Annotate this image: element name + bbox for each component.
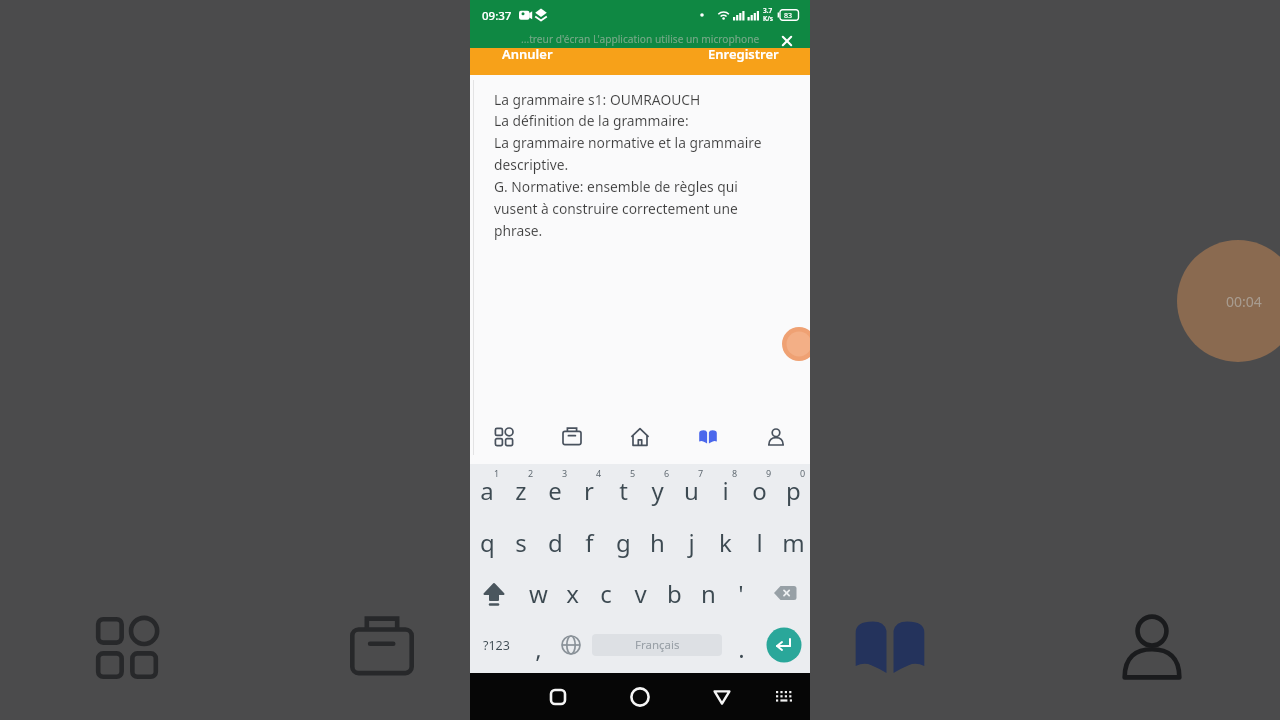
button[interactable]: n	[691, 567, 725, 619]
button[interactable]: '	[724, 567, 758, 619]
staticText: '	[738, 577, 744, 610]
staticText: La grammaire s1: OUMRAOUCH La définition…	[494, 90, 762, 240]
button[interactable]: e	[538, 464, 572, 516]
staticText: 2	[528, 467, 534, 479]
staticText: l	[756, 526, 763, 559]
staticText: a	[480, 474, 494, 507]
staticText: q	[480, 526, 495, 559]
staticText: 1	[494, 467, 500, 479]
button[interactable]	[622, 679, 658, 715]
button[interactable]	[754, 415, 798, 459]
button[interactable]: Français	[592, 634, 722, 656]
button[interactable]: j	[674, 516, 708, 568]
staticText: e	[548, 474, 562, 507]
button[interactable]	[474, 573, 514, 613]
button[interactable]: z	[504, 464, 538, 516]
staticText: s	[515, 526, 527, 559]
button[interactable]: r	[572, 464, 606, 516]
staticText: f	[585, 526, 594, 559]
staticText: 00:04	[1226, 292, 1262, 310]
button[interactable]: t	[606, 464, 640, 516]
button[interactable]: f	[572, 516, 606, 568]
staticText: 0	[800, 467, 806, 479]
staticText: h	[650, 526, 665, 559]
staticText: o	[752, 474, 767, 507]
staticText: w	[529, 577, 548, 610]
button[interactable]	[775, 29, 799, 53]
staticText: b	[667, 577, 682, 610]
staticText: 7	[698, 467, 704, 479]
staticText: 8	[732, 467, 738, 479]
staticText: y	[651, 474, 664, 507]
button[interactable]: b	[657, 567, 691, 619]
staticText: ?123	[483, 637, 510, 654]
button[interactable]: g	[606, 516, 640, 568]
button[interactable]: Annuler	[494, 44, 564, 64]
staticText: t	[619, 474, 628, 507]
staticText: 3.7 K/s	[763, 6, 774, 23]
button[interactable]: p	[776, 464, 810, 516]
button[interactable]: i	[708, 464, 742, 516]
staticText: x	[566, 577, 579, 610]
button[interactable]: h	[640, 516, 674, 568]
button[interactable]	[482, 415, 526, 459]
button[interactable]: c	[589, 567, 623, 619]
staticText: .	[738, 632, 745, 665]
staticText: 9	[766, 467, 772, 479]
staticText: m	[782, 526, 805, 559]
staticText: 09:37	[482, 8, 512, 24]
button[interactable]	[618, 415, 662, 459]
button[interactable]: x	[555, 567, 589, 619]
staticText: j	[688, 526, 695, 559]
staticText: 83	[784, 11, 793, 21]
button[interactable]: w	[521, 567, 555, 619]
staticText: ,	[535, 632, 542, 665]
button[interactable]: v	[623, 567, 657, 619]
button[interactable]	[770, 683, 798, 711]
staticText: k	[719, 526, 732, 559]
button[interactable]: s	[504, 516, 538, 568]
staticText: 4	[596, 467, 602, 479]
button[interactable]: ?123	[478, 631, 514, 659]
staticText: n	[701, 577, 716, 610]
staticText: p	[786, 474, 801, 507]
button[interactable]	[778, 323, 810, 365]
staticText: u	[684, 474, 699, 507]
button[interactable]: m	[776, 516, 810, 568]
staticText: Français	[635, 637, 680, 653]
staticText: r	[584, 474, 594, 507]
button[interactable]	[766, 627, 802, 663]
button[interactable]: k	[708, 516, 742, 568]
button[interactable]	[704, 679, 740, 715]
button[interactable]: .	[724, 622, 758, 674]
staticText: Enregistrer	[708, 45, 779, 63]
button[interactable]: l	[742, 516, 776, 568]
button[interactable]	[540, 679, 576, 715]
staticText: d	[548, 526, 563, 559]
button[interactable]: Enregistrer	[698, 44, 786, 64]
button[interactable]: a	[470, 464, 504, 516]
staticText: 3	[562, 467, 568, 479]
staticText: i	[722, 474, 729, 507]
staticText: z	[515, 474, 527, 507]
button[interactable]	[686, 415, 730, 459]
button[interactable]: q	[470, 516, 504, 568]
button[interactable]: y	[640, 464, 674, 516]
staticText: v	[634, 577, 647, 610]
staticText: ...treur d'écran L'application utilise u…	[521, 32, 760, 46]
button[interactable]: o	[742, 464, 776, 516]
button[interactable]: u	[674, 464, 708, 516]
button[interactable]	[550, 415, 594, 459]
staticText: c	[600, 577, 612, 610]
staticText: g	[616, 526, 631, 559]
staticText: 6	[664, 467, 670, 479]
button[interactable]: ,	[521, 622, 555, 674]
button[interactable]	[556, 630, 586, 660]
button[interactable]: d	[538, 516, 572, 568]
staticText: Annuler	[502, 45, 553, 63]
staticText: 5	[630, 467, 636, 479]
button[interactable]	[765, 573, 805, 613]
